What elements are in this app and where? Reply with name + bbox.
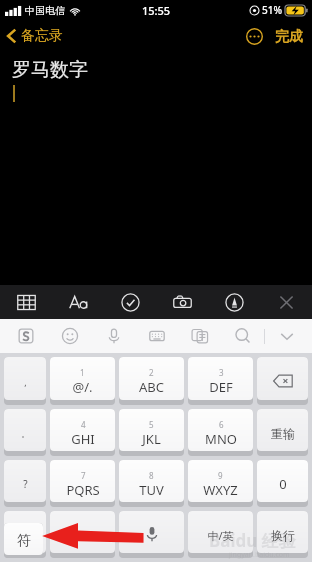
staticText: jingyan.baidu.com (229, 550, 290, 560)
staticText: , (24, 376, 27, 388)
button[interactable]: 7 (50, 460, 115, 507)
button[interactable]: Delete (257, 357, 308, 405)
staticText: 8 (149, 470, 154, 481)
staticText: 重输 (271, 426, 295, 441)
button[interactable]: Checklist (104, 285, 156, 319)
staticText: TUV (139, 481, 164, 499)
button[interactable]: 2 (119, 357, 184, 405)
button[interactable]: Search (221, 319, 264, 353)
staticText: 7 (81, 470, 86, 481)
staticText: 3 (219, 367, 224, 378)
staticText: 9 (218, 470, 223, 481)
button[interactable]: 中/英 (188, 511, 253, 558)
button[interactable]: 6 (188, 409, 253, 456)
staticText: DEF (209, 378, 233, 396)
staticText: PQRS (66, 481, 100, 499)
staticText: 中/英 (207, 528, 234, 543)
staticText: 4 (81, 419, 86, 430)
button[interactable]: 0 (257, 460, 308, 507)
button[interactable]: 123 (50, 511, 115, 558)
staticText: ? (23, 477, 28, 491)
button[interactable]: 符 (4, 523, 43, 558)
button[interactable]: 重输 (257, 409, 308, 456)
staticText: ABC (139, 378, 164, 396)
staticText: Baidu 经验 (209, 529, 296, 552)
staticText: 6 (219, 419, 224, 430)
staticText: 完成 (275, 28, 303, 46)
staticText: 中国电信 (25, 4, 65, 17)
button[interactable]: 8 (119, 460, 184, 507)
staticText: 123 (72, 527, 93, 543)
button[interactable]: 5 (119, 409, 184, 456)
button[interactable]: Table (0, 285, 52, 319)
staticText: 换行 (271, 528, 295, 543)
staticText: 15:55 (142, 3, 171, 18)
button[interactable]: Close keyboard (260, 285, 312, 319)
staticText: 2 (149, 367, 154, 378)
button[interactable]: Voice input (119, 511, 184, 558)
staticText: JKL (142, 430, 161, 448)
staticText: WXYZ (203, 481, 238, 499)
button[interactable]: 完成 (271, 23, 312, 51)
button[interactable]: 换行 (257, 511, 308, 558)
staticText: 5 (149, 419, 154, 430)
staticText: 备忘录 (21, 27, 63, 45)
staticText: GHI (71, 430, 95, 448)
button[interactable]: Sogou input (4, 319, 48, 353)
staticText: 0 (279, 475, 287, 493)
button[interactable]: ? (4, 460, 46, 507)
button[interactable]: Hide keyboard (265, 319, 308, 353)
staticText: 罗马数字 (12, 58, 88, 82)
button[interactable]: 3 (188, 357, 253, 405)
button[interactable]: 1 (50, 357, 115, 405)
button[interactable]: ! (4, 511, 46, 558)
staticText: 符 (17, 532, 31, 550)
button[interactable]: Camera (156, 285, 208, 319)
button[interactable]: More options (240, 22, 269, 51)
button[interactable]: Keyboard layout (135, 319, 178, 353)
staticText: 1 (80, 367, 85, 378)
button[interactable]: 4 (50, 409, 115, 456)
button[interactable]: 。 (4, 409, 46, 456)
button[interactable]: Voice input (92, 319, 135, 353)
staticText: ! (24, 528, 27, 542)
staticText: 51% (262, 3, 282, 17)
button[interactable]: 备忘录 (0, 23, 71, 49)
button[interactable]: , (4, 357, 46, 405)
button[interactable]: Text format (52, 285, 104, 319)
staticText: 。 (21, 428, 30, 439)
staticText: MNO (205, 430, 237, 448)
button[interactable]: 9 (188, 460, 253, 507)
button[interactable]: Markup (208, 285, 260, 319)
button[interactable]: Translate (178, 319, 221, 353)
button[interactable]: Emoji (48, 319, 92, 353)
staticText: @/. (72, 378, 93, 396)
